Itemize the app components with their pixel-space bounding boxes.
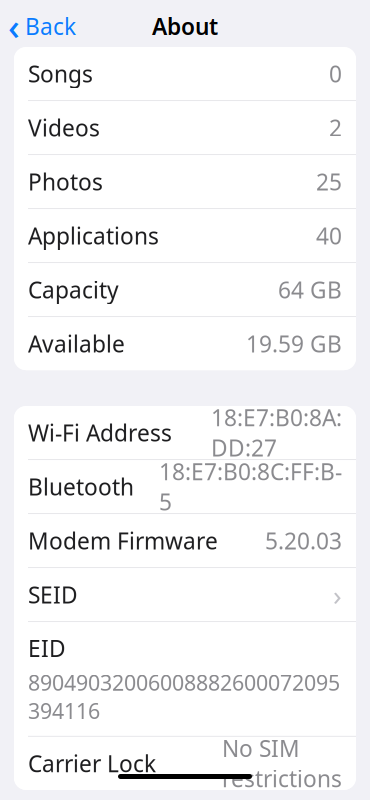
button[interactable]: EID [14, 622, 356, 736]
staticText: 0 [329, 59, 342, 89]
staticText: ‹ [8, 2, 20, 50]
staticText: 64 GB [278, 275, 342, 305]
staticText: 40 [316, 221, 342, 251]
staticText: Back [25, 11, 76, 41]
button[interactable]: Capacity [14, 263, 356, 316]
staticText: Songs [28, 59, 93, 89]
button[interactable]: SEID [14, 568, 356, 621]
staticText: Bluetooth [28, 472, 134, 502]
staticText: 25 [316, 167, 342, 197]
staticText: Carrier Lock [28, 748, 156, 778]
staticText: › [333, 576, 342, 613]
staticText: 2 [329, 113, 342, 143]
staticText: 18:E7:B0:8C:FF:B5 [159, 456, 342, 517]
staticText: EID [28, 633, 66, 663]
staticText: Modem Firmware [28, 526, 218, 556]
staticText: 18:E7:B0:8A:DD:27 [211, 402, 342, 463]
staticText: No SIM restrictions [222, 733, 342, 793]
button[interactable]: Wi-Fi Address [14, 406, 356, 459]
staticText: About [152, 11, 218, 41]
button[interactable]: Bluetooth [14, 460, 356, 513]
staticText: 19.59 GB [246, 329, 342, 359]
button[interactable]: Videos [14, 101, 356, 154]
button[interactable]: Available [14, 317, 356, 370]
staticText: 89049032006008882600072095394116 [28, 668, 340, 725]
staticText: Photos [28, 167, 103, 197]
staticText: Capacity [28, 275, 119, 305]
button[interactable]: Modem Firmware [14, 514, 356, 567]
button[interactable]: Photos [14, 155, 356, 208]
button[interactable]: ‹ [0, 0, 76, 56]
button[interactable]: Applications [14, 209, 356, 262]
button[interactable]: Carrier Lock [14, 737, 356, 790]
staticText: Wi-Fi Address [28, 418, 172, 448]
button[interactable]: Songs [14, 47, 356, 100]
staticText: SEID [28, 580, 78, 610]
staticText: 5.20.03 [265, 526, 342, 556]
staticText: Applications [28, 221, 159, 251]
staticText: Videos [28, 113, 100, 143]
staticText: Available [28, 329, 125, 359]
